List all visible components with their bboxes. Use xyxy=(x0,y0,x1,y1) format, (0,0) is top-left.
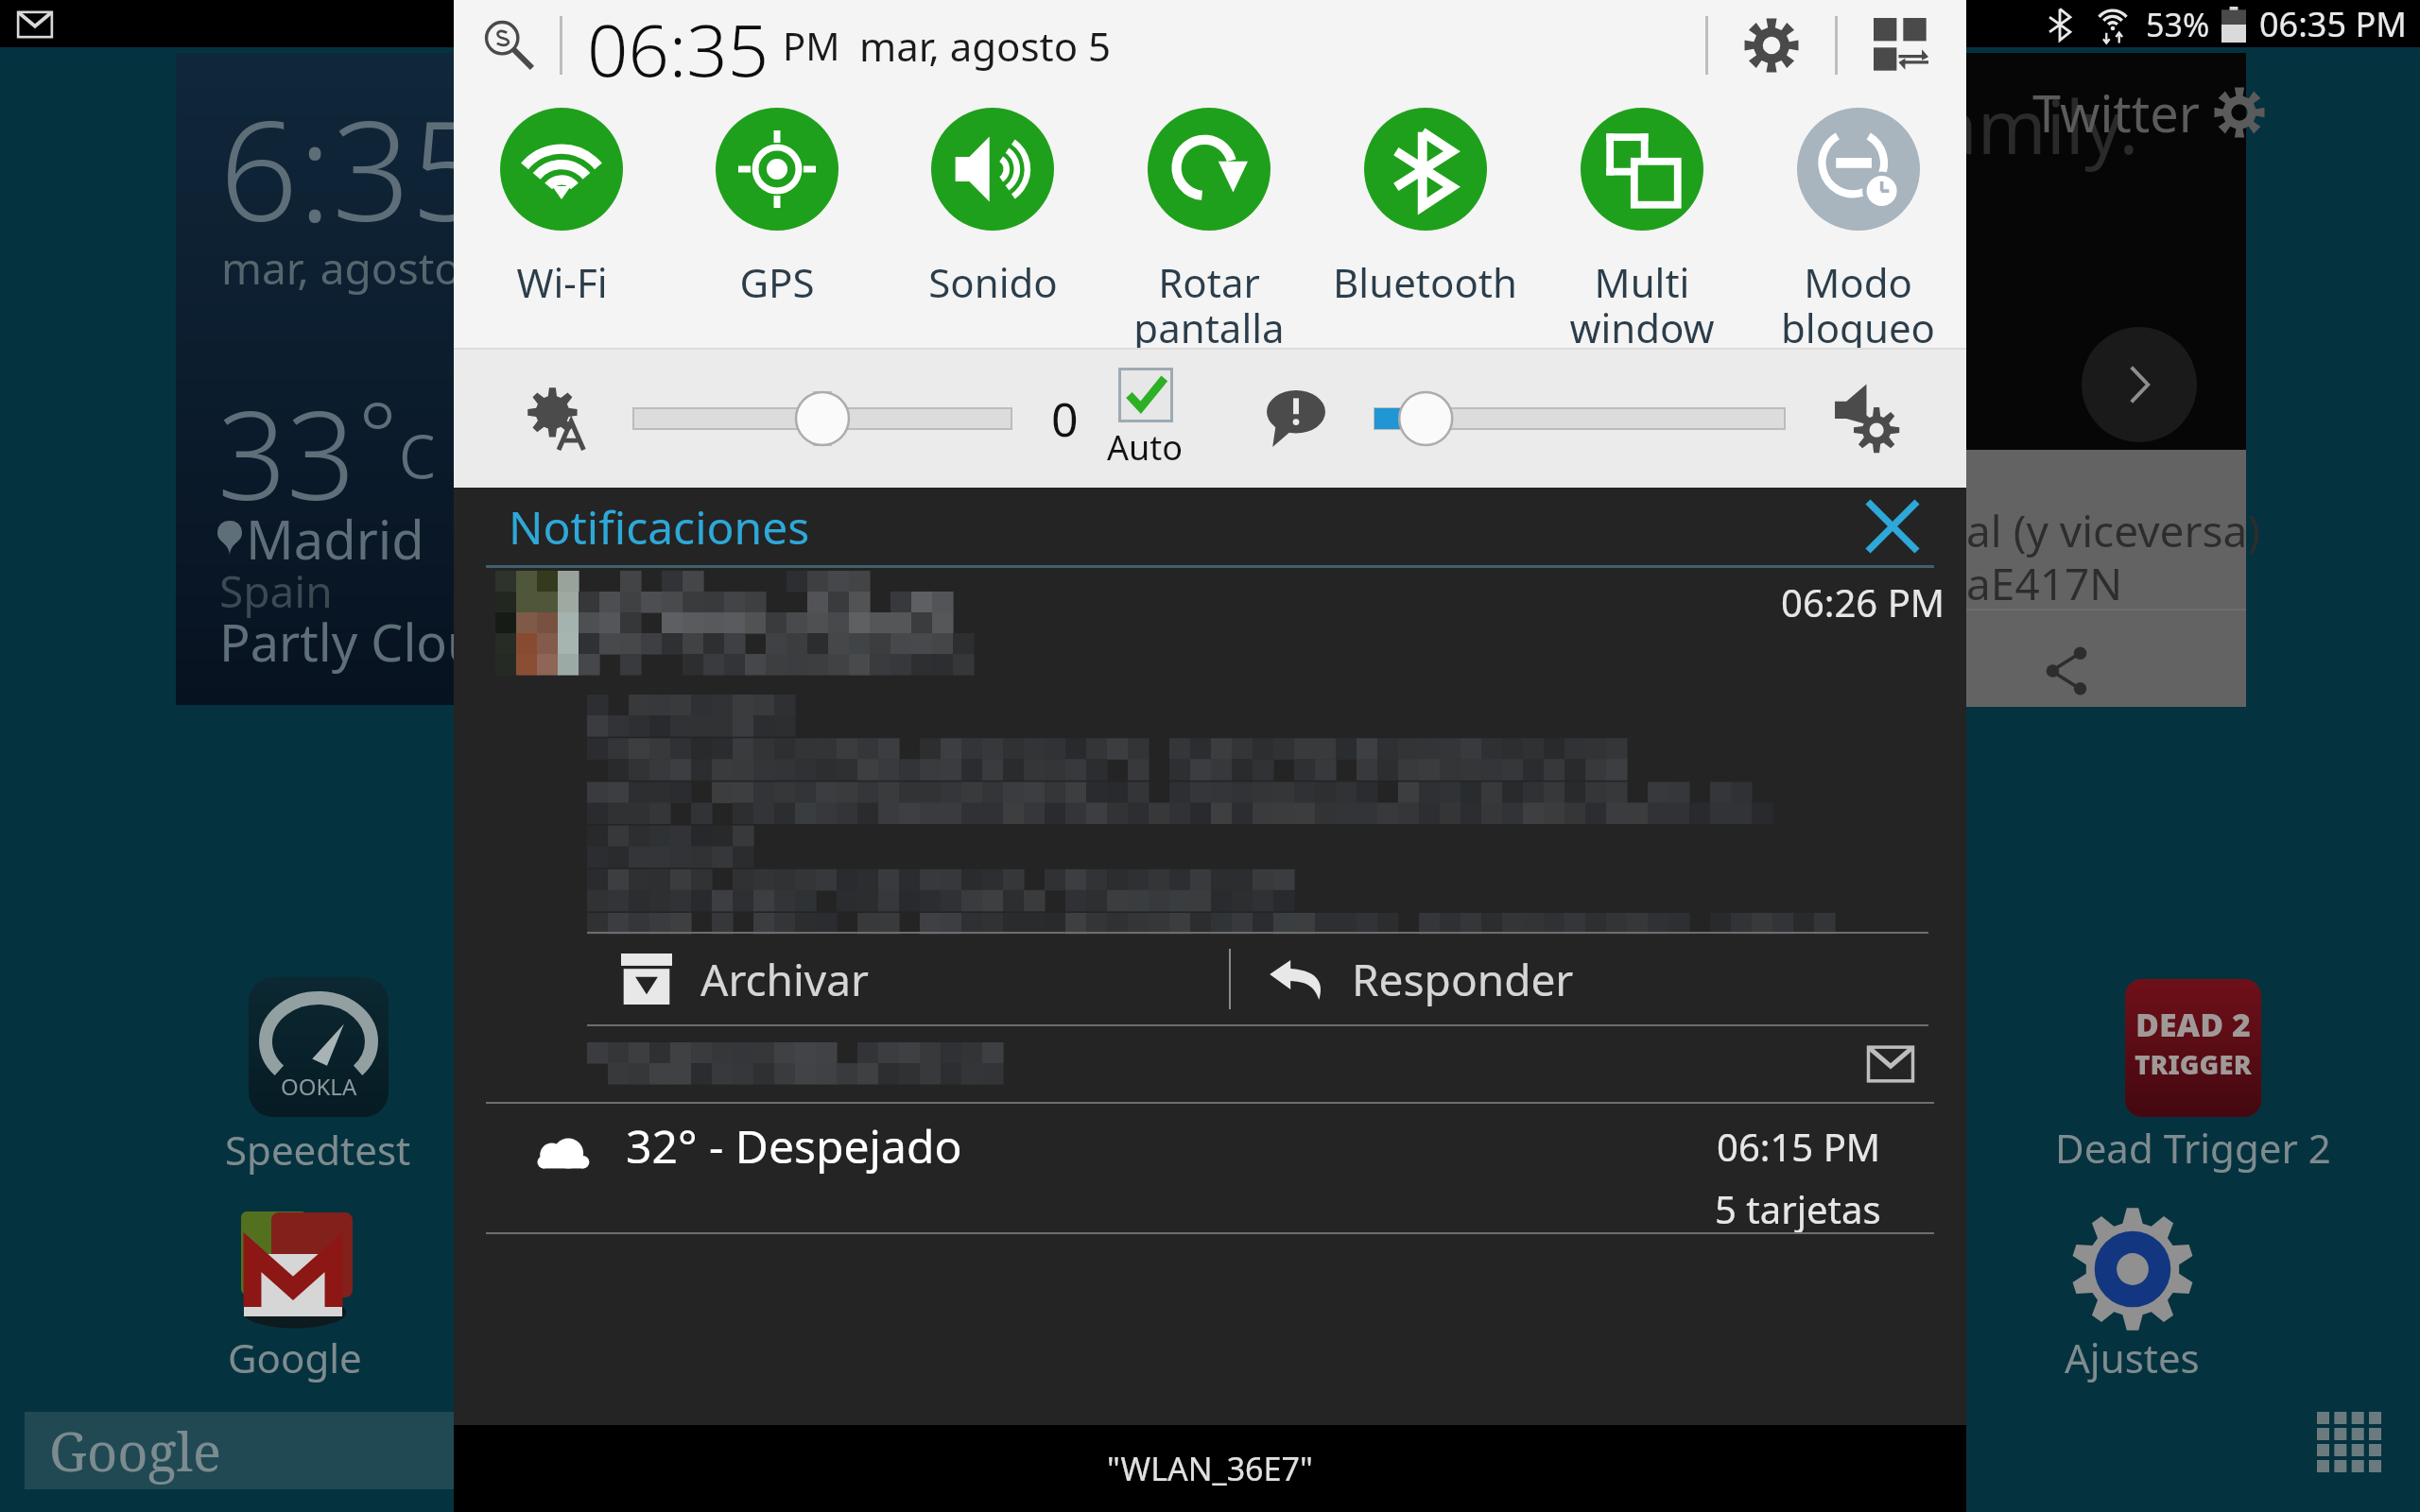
staticText: Modo bloqueo xyxy=(1781,255,1935,348)
staticText: al (y viceversa) xyxy=(1966,501,2261,560)
button[interactable]: Next tweet xyxy=(2082,327,2197,442)
staticText: 0 xyxy=(1051,387,1079,451)
button[interactable]: Rotar pantalla xyxy=(1100,91,1317,348)
button[interactable]: DEAD 2 xyxy=(2055,979,2331,1175)
staticText: Ajustes xyxy=(2065,1331,2200,1384)
button[interactable]: Sonido xyxy=(885,91,1100,348)
staticText: Google xyxy=(228,1331,362,1384)
staticText: "WLAN_36E7" xyxy=(1107,1447,1313,1490)
button[interactable]: Slider xyxy=(633,379,1011,458)
button[interactable]: Google search xyxy=(25,1412,705,1489)
button[interactable]: S Finder search xyxy=(476,12,543,78)
staticText: Auto xyxy=(1107,424,1184,471)
button[interactable]: Archivar xyxy=(587,934,1229,1024)
staticText: Responder xyxy=(1352,950,1574,1009)
button[interactable]: Multi window xyxy=(1533,91,1750,348)
button[interactable]: Responder xyxy=(1231,934,1928,1024)
button[interactable]: 32° - Despejado xyxy=(454,1104,1966,1232)
staticText: Google xyxy=(49,1415,222,1486)
button[interactable] xyxy=(454,1026,1966,1102)
staticText: 06:35 xyxy=(587,0,769,91)
staticText: aE417N xyxy=(1966,554,2123,613)
button[interactable]: Slider xyxy=(1374,379,1785,458)
staticText: amily. xyxy=(1936,76,2139,176)
button[interactable]: Ajustes xyxy=(2065,1208,2200,1384)
staticText: OOKLA xyxy=(281,1071,357,1102)
staticText: 06:35 PM xyxy=(2259,1,2407,47)
staticText: Multi window xyxy=(1569,255,1715,348)
staticText: TRIGGER xyxy=(2135,1046,2252,1082)
staticText: Madrid xyxy=(246,503,424,575)
staticText: c xyxy=(398,393,436,501)
staticText: Archivar xyxy=(700,950,870,1009)
staticText: 53% xyxy=(2146,3,2210,46)
staticText: Speedtest xyxy=(225,1123,411,1177)
staticText: 06:26 PM xyxy=(1781,576,1945,627)
button[interactable]: Google xyxy=(219,1210,371,1384)
button[interactable]: Edit quick settings xyxy=(1864,9,1938,82)
staticText: Sonido xyxy=(928,255,1058,309)
staticText: 06:15 PM xyxy=(1717,1121,1881,1172)
staticText: Wi-Fi xyxy=(516,255,608,309)
staticText: Notificaciones xyxy=(509,496,810,558)
staticText: Rotar pantalla xyxy=(1133,255,1285,348)
button[interactable]: Auto brightness xyxy=(1118,368,1173,422)
button[interactable]: Bluetooth xyxy=(1317,91,1533,348)
staticText: mar, agosto 5 xyxy=(221,238,497,298)
staticText: Bluetooth xyxy=(1333,255,1517,309)
staticText: mar, agosto 5 xyxy=(859,19,1112,73)
button[interactable]: Settings xyxy=(1735,9,1808,82)
button[interactable]: OOKLA xyxy=(225,977,411,1177)
button[interactable]: Modo bloqueo xyxy=(1750,91,1966,348)
staticText: ° xyxy=(358,370,398,494)
staticText: Dead Trigger 2 xyxy=(2055,1121,2331,1175)
staticText: PM xyxy=(783,20,840,71)
staticText: Spain xyxy=(219,561,333,621)
button[interactable]: Apps xyxy=(2297,1393,2401,1491)
staticText: DEAD 2 xyxy=(2135,1003,2252,1046)
staticText: Twitter xyxy=(2032,77,2201,147)
staticText: 6:35 xyxy=(219,74,490,262)
button[interactable]: Wi-Fi xyxy=(454,91,669,348)
button[interactable]: GPS xyxy=(669,91,885,348)
staticText: Partly Cloudy xyxy=(219,607,537,677)
staticText: 33 xyxy=(217,370,356,535)
staticText: 32° - Despejado xyxy=(626,1115,962,1177)
staticText: GPS xyxy=(739,255,815,309)
staticText: 5 tarjetas xyxy=(1715,1183,1881,1234)
button[interactable]: Clear all notifications xyxy=(1857,490,1928,562)
